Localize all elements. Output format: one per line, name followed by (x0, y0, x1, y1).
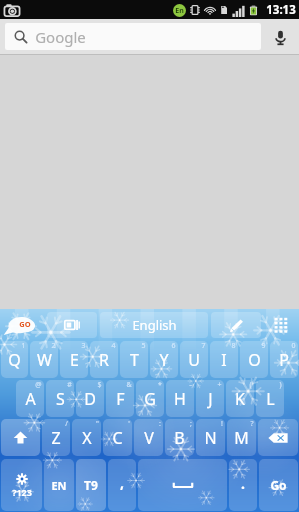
staticText: J (208, 388, 213, 410)
button[interactable]: Q (1, 341, 28, 378)
staticText: Y (159, 349, 169, 371)
staticText: - (189, 380, 192, 390)
button[interactable]: English (100, 312, 208, 338)
button[interactable]: G (136, 380, 164, 417)
staticText: 4 (111, 341, 116, 351)
staticText: L (266, 388, 275, 410)
staticText: 1 (21, 341, 26, 351)
staticText: + (217, 380, 222, 390)
button[interactable]: S (46, 380, 74, 417)
staticText: ) (279, 380, 282, 390)
button[interactable]: Symbols and settings (1, 459, 42, 511)
staticText: P (279, 349, 289, 371)
staticText: X (82, 427, 92, 449)
button[interactable]: Y (150, 341, 178, 378)
button[interactable]: Google (5, 23, 261, 50)
staticText: , (120, 473, 124, 492)
staticText: 7 (201, 341, 206, 351)
button[interactable]: T9 (76, 459, 106, 511)
button[interactable]: H (166, 380, 194, 417)
button[interactable]: V (134, 419, 163, 456)
button[interactable]: GO Keyboard menu (2, 311, 44, 339)
staticText: C (112, 427, 123, 449)
button[interactable]: P (270, 341, 298, 378)
staticText: B (174, 427, 185, 449)
button[interactable]: M (227, 419, 256, 456)
staticText: ?123 (12, 486, 32, 498)
button[interactable]: Keyboard layouts (265, 312, 297, 338)
staticText: / (65, 419, 68, 429)
staticText: ? (250, 419, 254, 429)
staticText: V (144, 427, 154, 449)
staticText: EN (51, 478, 67, 493)
staticText: $ (97, 380, 102, 390)
staticText: 8 (231, 341, 236, 351)
button[interactable]: E (60, 341, 88, 378)
button[interactable]: O (240, 341, 268, 378)
button[interactable]: I (210, 341, 238, 378)
staticText: Google (35, 27, 86, 47)
other: Camera (3, 1, 21, 19)
button[interactable]: , (108, 459, 136, 511)
staticText: U (188, 349, 200, 371)
button[interactable]: K (226, 380, 254, 417)
staticText: @ (35, 380, 42, 390)
staticText: M (234, 427, 249, 449)
staticText: 6 (171, 341, 176, 351)
button[interactable]: B (165, 419, 194, 456)
button[interactable]: . (229, 459, 257, 511)
staticText: F (116, 388, 125, 410)
button[interactable]: Shift (1, 419, 40, 456)
staticText: English (132, 316, 177, 334)
button[interactable]: T (120, 341, 148, 378)
staticText: G (144, 388, 156, 410)
staticText: & (126, 380, 132, 390)
staticText: Z (51, 427, 61, 449)
button[interactable]: D (76, 380, 104, 417)
button[interactable]: Clipboard (47, 312, 97, 338)
staticText: T (130, 349, 139, 371)
staticText: Q (8, 349, 21, 371)
button[interactable]: A (16, 380, 44, 417)
staticText: * (158, 380, 162, 390)
staticText: GO (19, 319, 31, 329)
staticText: ; (190, 419, 192, 429)
staticText: T9 (84, 477, 98, 493)
staticText: " (96, 419, 99, 429)
staticText: ' (128, 419, 130, 429)
button[interactable]: C (103, 419, 132, 456)
button[interactable]: X (72, 419, 101, 456)
staticText: 0 (291, 341, 296, 351)
button[interactable]: W (30, 341, 58, 378)
staticText: # (67, 380, 72, 390)
staticText: ! (221, 419, 223, 429)
staticText: : (159, 419, 161, 429)
button[interactable]: L (256, 380, 284, 417)
button[interactable]: Backspace (258, 419, 298, 456)
staticText: O (248, 349, 261, 371)
staticText: 9 (261, 341, 266, 351)
button[interactable]: R (90, 341, 118, 378)
staticText: 5 (141, 341, 146, 351)
staticText: W (37, 349, 52, 371)
staticText: N (204, 427, 217, 449)
staticText: 13:13 (266, 2, 296, 18)
staticText: K (235, 388, 245, 410)
button[interactable]: N (196, 419, 225, 456)
button[interactable]: EN (44, 459, 74, 511)
staticText: D (84, 388, 96, 410)
button[interactable]: Z (42, 419, 70, 456)
button[interactable]: Handwriting (211, 312, 261, 338)
staticText: S (56, 388, 65, 410)
button[interactable]: Voice search (261, 19, 299, 55)
staticText: Go (270, 477, 287, 493)
staticText: A (25, 388, 36, 410)
button[interactable]: J (196, 380, 224, 417)
staticText: R (99, 349, 109, 371)
button[interactable]: Space (138, 459, 227, 511)
staticText: E (70, 349, 79, 371)
staticText: En (175, 6, 184, 16)
button[interactable]: F (106, 380, 134, 417)
button[interactable]: U (180, 341, 208, 378)
button[interactable]: Go (259, 459, 298, 511)
